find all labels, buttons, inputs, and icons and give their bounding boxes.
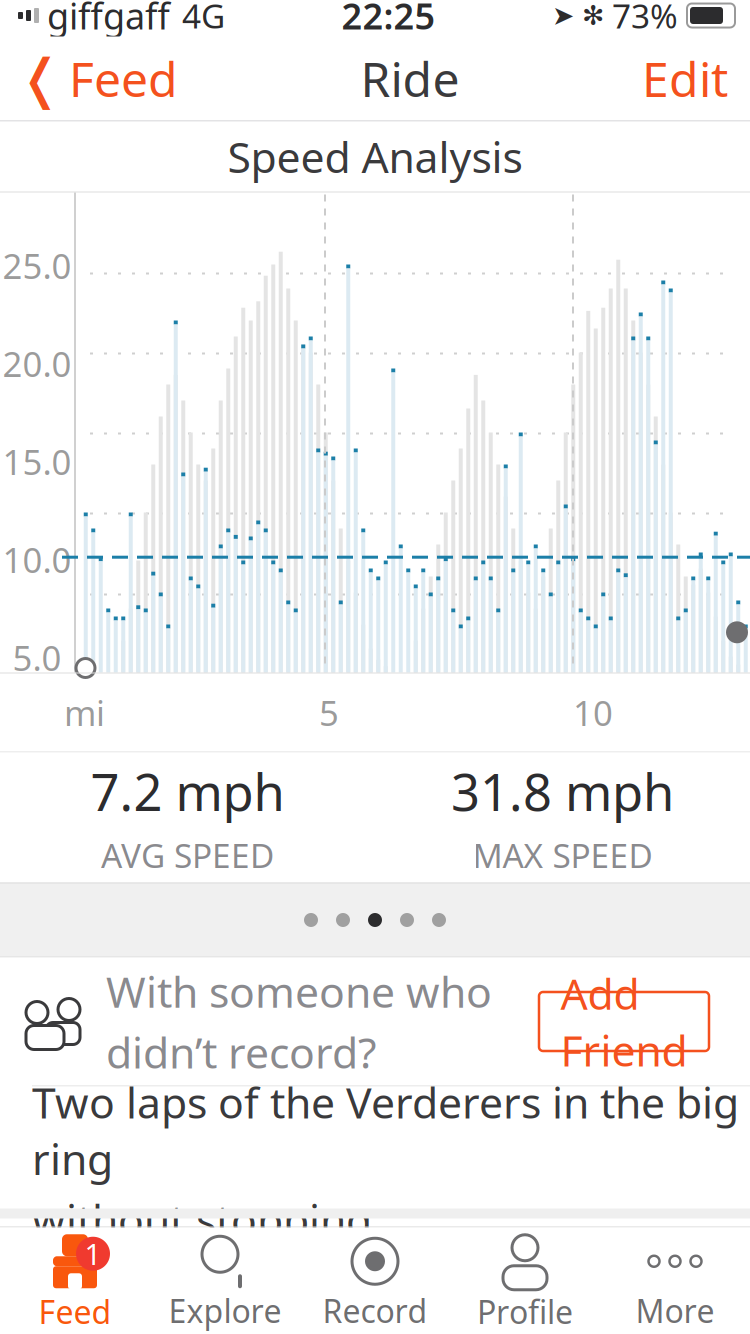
staticText: 10.0 [2, 536, 71, 582]
button[interactable]: ❬ [0, 37, 178, 120]
staticText: Edit [642, 47, 728, 110]
staticText: Ride [360, 47, 459, 110]
staticText: 4G [182, 0, 225, 38]
staticText: Profile [477, 1290, 573, 1333]
button[interactable]: Record [300, 1227, 450, 1334]
staticText: 31.8 mph [451, 758, 674, 825]
button[interactable]: Profile [450, 1227, 600, 1334]
staticText: 22:25 [341, 0, 435, 39]
staticText: 73% [612, 0, 678, 38]
staticText: Feed [38, 1290, 111, 1333]
staticText: 5.0 [12, 635, 61, 681]
staticText: 10 [573, 689, 613, 735]
staticText: mi [64, 689, 105, 735]
staticText: didn’t record? [106, 1023, 377, 1080]
staticText: Record [322, 1289, 427, 1332]
button[interactable]: Explore [150, 1227, 300, 1334]
staticText: giffgaff [47, 0, 170, 39]
staticText: Speed Analysis [227, 128, 522, 185]
staticText: 5 [319, 689, 339, 735]
staticText: Feed [69, 47, 178, 110]
staticText: ✻ [582, 0, 604, 31]
staticText: AVG SPEED [101, 833, 274, 877]
staticText: 20.0 [2, 340, 71, 386]
staticText: 15.0 [2, 438, 71, 484]
staticText: without stopping. [32, 1191, 383, 1247]
staticText: MAX SPEED [472, 833, 652, 877]
button[interactable]: Edit [642, 37, 750, 120]
staticText: ➤ [552, 0, 574, 31]
staticText: Add Friend [560, 965, 687, 1078]
staticText: ❬ [18, 48, 63, 109]
button[interactable]: Add Friend [539, 992, 709, 1051]
staticText: Two laps of the Verderers in the big rin… [32, 1073, 739, 1187]
staticText: With someone who [106, 963, 492, 1019]
staticText: More [635, 1289, 714, 1332]
button[interactable]: More [600, 1227, 750, 1334]
staticText: Explore [168, 1289, 281, 1332]
staticText: 1 [84, 1234, 101, 1273]
staticText: 7.2 mph [90, 758, 284, 825]
staticText: 25.0 [2, 242, 71, 288]
button[interactable]: 1 [0, 1227, 150, 1334]
